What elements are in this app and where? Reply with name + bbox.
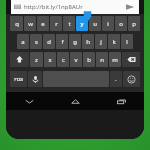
button[interactable]: h — [82, 34, 94, 49]
staticText: e — [41, 20, 45, 28]
staticText: q — [15, 20, 19, 28]
button[interactable]: w — [24, 16, 36, 31]
staticText: c — [62, 56, 65, 64]
button[interactable]: s — [30, 34, 42, 49]
button[interactable]: u — [89, 16, 101, 31]
staticText: b — [87, 56, 91, 64]
staticText: m — [112, 56, 118, 64]
staticText: w — [28, 20, 33, 28]
other: Page menu — [14, 4, 21, 11]
staticText: ?123 — [14, 77, 23, 82]
staticText: k — [112, 38, 116, 46]
button[interactable]: r — [50, 16, 62, 31]
button[interactable]: j — [95, 34, 107, 49]
staticText: p — [132, 20, 136, 28]
button[interactable]: Voice input — [28, 71, 42, 87]
button[interactable]: Hide keyboard — [6, 92, 52, 110]
button[interactable]: l — [121, 34, 133, 49]
staticText: r — [55, 20, 58, 28]
staticText: http://bit.ly/1np8AUr — [24, 3, 83, 11]
button[interactable]: Home — [52, 92, 98, 110]
button[interactable]: Go — [124, 1, 136, 13]
button[interactable]: d — [43, 34, 55, 49]
button[interactable]: Backspace — [122, 52, 140, 67]
button[interactable]: y — [76, 16, 88, 31]
button[interactable]: k — [108, 34, 120, 49]
button[interactable]: Shift — [10, 52, 29, 67]
button[interactable]: m — [109, 52, 121, 67]
staticText: x — [48, 56, 52, 64]
button[interactable]: c — [57, 52, 69, 67]
staticText: j — [100, 38, 102, 46]
staticText: i — [107, 20, 109, 28]
staticText: s — [35, 38, 38, 46]
staticText: t — [68, 20, 71, 28]
button[interactable]: Emoji — [123, 71, 140, 87]
staticText: z — [35, 56, 38, 64]
button[interactable]: n — [96, 52, 108, 67]
staticText: u — [93, 20, 97, 28]
button[interactable]: t — [63, 16, 75, 31]
button[interactable]: e — [37, 16, 49, 31]
staticText: n — [100, 56, 104, 64]
button[interactable]: b — [83, 52, 95, 67]
button[interactable]: v — [70, 52, 82, 67]
button[interactable]: Recents — [98, 92, 144, 110]
button[interactable]: p — [128, 16, 140, 31]
staticText: d — [47, 38, 51, 46]
button[interactable]: f — [56, 34, 68, 49]
button[interactable]: q — [10, 16, 23, 31]
button[interactable]: x — [44, 52, 56, 67]
staticText: g — [73, 38, 77, 46]
staticText: . — [115, 75, 117, 83]
staticText: f — [61, 38, 64, 46]
button[interactable]: i — [102, 16, 114, 31]
staticText: l — [126, 38, 128, 46]
staticText: a — [21, 38, 25, 46]
button[interactable]: . — [110, 71, 122, 87]
staticText: o — [119, 20, 123, 28]
button[interactable]: ?123 — [10, 71, 27, 87]
button[interactable]: o — [115, 16, 127, 31]
staticText: h — [86, 38, 90, 46]
button[interactable]: z — [30, 52, 43, 67]
button[interactable]: a — [17, 34, 29, 49]
button[interactable]: Page menu — [11, 0, 139, 14]
button[interactable]: g — [69, 34, 81, 49]
staticText: y — [80, 20, 84, 28]
staticText: v — [74, 56, 78, 64]
